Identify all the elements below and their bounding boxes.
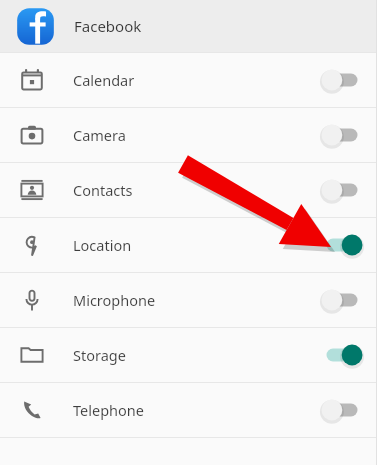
button[interactable]: Storage permission toggle [315, 338, 369, 372]
button[interactable]: Contacts permission toggle [315, 173, 369, 207]
button[interactable]: Calendar permission toggle [315, 63, 369, 97]
button[interactable]: Contacts [0, 163, 377, 217]
button[interactable]: Storage [0, 328, 377, 382]
button[interactable]: Microphone permission toggle [315, 283, 369, 317]
button[interactable]: Facebook [0, 0, 377, 52]
staticText: Storage [73, 345, 126, 365]
staticText: Contacts [73, 180, 133, 200]
staticText: Camera [73, 125, 126, 145]
staticText: Microphone [73, 290, 156, 310]
button[interactable]: Telephone [0, 383, 377, 437]
staticText: Facebook [74, 16, 142, 36]
staticText: Location [73, 235, 132, 255]
button[interactable]: Camera permission toggle [315, 118, 369, 152]
button[interactable]: Location [0, 218, 377, 272]
button[interactable]: Microphone [0, 273, 377, 327]
staticText: Telephone [73, 400, 144, 420]
button[interactable]: Telephone permission toggle [315, 393, 369, 427]
button[interactable]: Calendar [0, 53, 377, 107]
staticText: Calendar [73, 70, 135, 90]
button[interactable]: Camera [0, 108, 377, 162]
button[interactable]: Location permission toggle [315, 228, 369, 262]
